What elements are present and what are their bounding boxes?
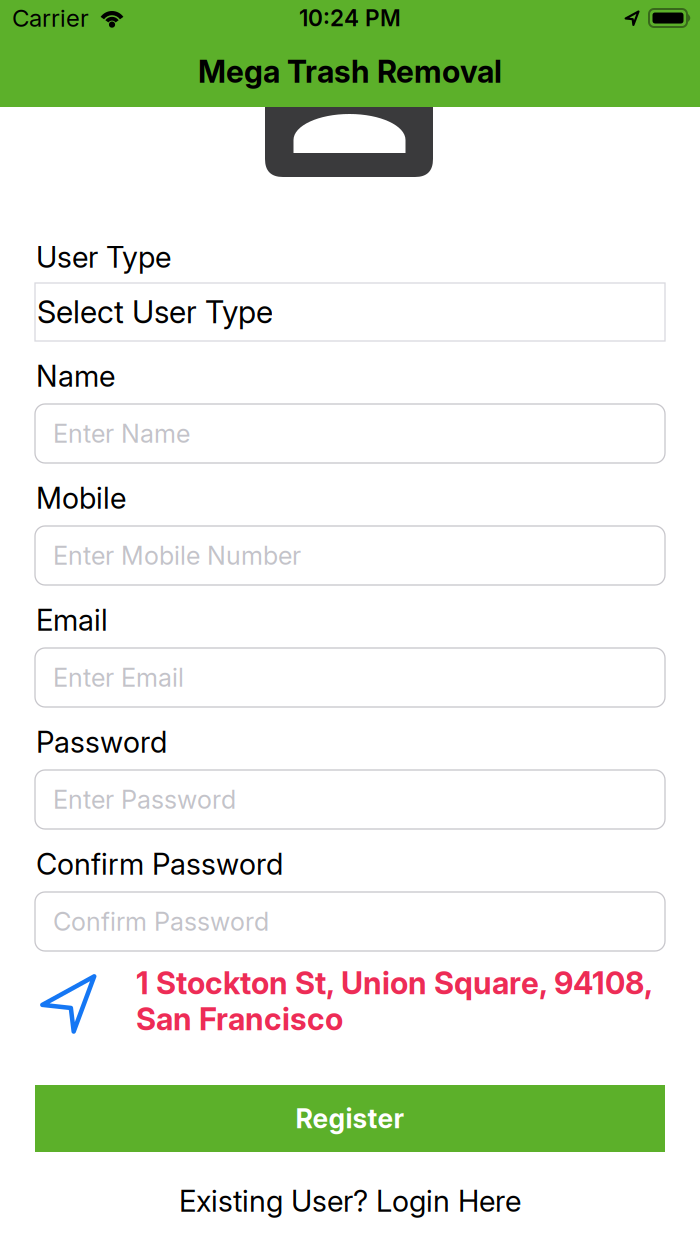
staticText: San Francisco xyxy=(136,1001,343,1037)
staticText: Email xyxy=(36,603,108,637)
staticText: Select User Type xyxy=(37,294,273,330)
staticText: Enter Name xyxy=(53,419,190,448)
button[interactable]: Existing User? Login Here xyxy=(179,1184,521,1218)
staticText: Mobile xyxy=(36,481,126,515)
staticText: 10:24 PM xyxy=(299,5,401,31)
staticText: Enter Mobile Number xyxy=(53,541,301,570)
staticText: Carrier xyxy=(12,4,89,32)
staticText: Existing User? Login Here xyxy=(179,1184,521,1218)
button[interactable]: Select User Type xyxy=(35,283,665,341)
staticText: Enter Password xyxy=(53,785,236,814)
button[interactable]: 1 Stockton St, Union Square, 94108, xyxy=(20,966,680,1044)
button[interactable]: Register xyxy=(35,1085,665,1152)
staticText: Password xyxy=(36,725,167,759)
staticText: Mega Trash Removal xyxy=(198,53,502,90)
staticText: Register xyxy=(295,1103,404,1134)
staticText: Name xyxy=(36,359,115,393)
staticText: Confirm Password xyxy=(53,907,269,936)
staticText: User Type xyxy=(36,240,171,274)
staticText: 1 Stockton St, Union Square, 94108, xyxy=(136,965,653,1001)
staticText: Enter Email xyxy=(53,663,184,692)
staticText: Confirm Password xyxy=(36,847,283,881)
